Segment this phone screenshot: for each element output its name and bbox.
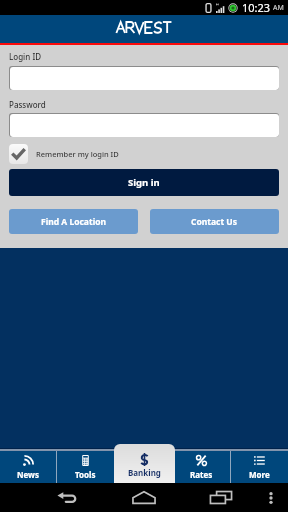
staticText: Password <box>9 99 46 110</box>
button[interactable]: Rates <box>173 451 230 483</box>
button[interactable]: Sign in <box>9 169 279 196</box>
button[interactable]: Remember my login ID <box>9 144 119 164</box>
staticText: AM <box>273 3 284 13</box>
button[interactable]: Tools <box>57 451 114 483</box>
button[interactable]: Back <box>49 483 85 512</box>
button[interactable]: More <box>231 451 288 483</box>
button[interactable]: Menu <box>258 483 284 512</box>
staticText: Banking <box>128 467 161 478</box>
button[interactable]: Find A Location <box>9 209 138 234</box>
button[interactable]: Recent apps <box>203 483 239 512</box>
staticText: More <box>249 469 270 480</box>
button[interactable]: Contact Us <box>150 209 279 234</box>
staticText: Login ID <box>9 51 42 62</box>
staticText: 10:23 <box>242 0 271 15</box>
staticText: Sign in <box>128 176 160 189</box>
button[interactable]: Home <box>126 483 162 512</box>
staticText: Find A Location <box>41 216 107 228</box>
staticText: News <box>17 469 39 480</box>
button[interactable]: News <box>0 451 56 483</box>
staticText: Tools <box>75 469 96 480</box>
staticText: Rates <box>190 469 213 480</box>
button[interactable] <box>9 66 279 90</box>
staticText: Remember my login ID <box>36 149 119 159</box>
button[interactable] <box>9 113 279 137</box>
staticText: Contact Us <box>191 216 238 228</box>
button[interactable]: Banking <box>114 444 175 483</box>
